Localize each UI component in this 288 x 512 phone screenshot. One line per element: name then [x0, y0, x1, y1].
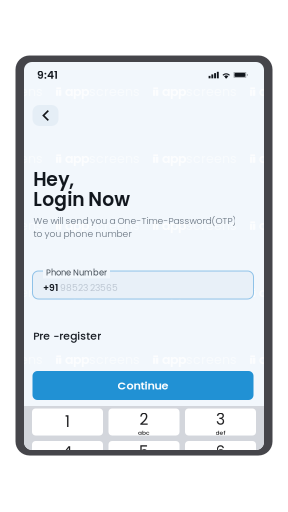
staticText: app: [65, 351, 89, 368]
staticText: app: [65, 150, 89, 167]
staticText: Hey,: [33, 166, 74, 193]
staticText: screens: [0, 418, 43, 435]
button[interactable]: 6: [185, 441, 256, 468]
staticText: screens: [0, 351, 43, 368]
staticText: app: [162, 418, 186, 435]
staticText: screens: [89, 418, 140, 435]
staticText: app: [259, 83, 283, 100]
staticText: 2: [139, 409, 148, 430]
staticText: screens: [89, 284, 140, 301]
staticText: abc: [138, 428, 150, 437]
staticText: screens: [0, 217, 43, 234]
button[interactable]: Back: [32, 105, 58, 126]
staticText: app: [259, 351, 283, 368]
button[interactable]: 4: [32, 441, 103, 468]
staticText: Pre -register: [33, 328, 101, 343]
staticText: screens: [0, 284, 43, 301]
staticText: app: [65, 83, 89, 100]
button[interactable]: 3: [185, 408, 256, 435]
staticText: app: [259, 150, 283, 167]
staticText: app: [162, 351, 186, 368]
staticText: app: [162, 217, 186, 234]
staticText: to you phone number: [33, 227, 131, 240]
staticText: 5: [139, 441, 149, 463]
staticText: 9:41: [37, 67, 58, 82]
staticText: app: [259, 418, 283, 435]
button[interactable]: 1: [32, 408, 103, 435]
staticText: Phone Number: [46, 267, 107, 278]
staticText: screens: [186, 284, 237, 301]
staticText: app: [259, 284, 283, 301]
button[interactable]: 2: [108, 408, 179, 435]
staticText: app: [65, 217, 89, 234]
staticText: app: [259, 217, 283, 234]
staticText: 3: [216, 409, 225, 430]
staticText: app: [162, 150, 186, 167]
staticText: screens: [89, 217, 140, 234]
staticText: screens: [0, 83, 43, 100]
staticText: 6: [215, 441, 225, 463]
staticText: screens: [186, 418, 237, 435]
staticText: 98523 23565: [58, 282, 118, 294]
staticText: def: [215, 428, 225, 437]
staticText: screens: [186, 217, 237, 234]
staticText: Login Now: [33, 186, 130, 213]
button[interactable]: 5: [108, 441, 179, 468]
staticText: app: [162, 284, 186, 301]
staticText: app: [65, 284, 89, 301]
staticText: We will send you a One-Time-Password(OTP…: [33, 214, 236, 227]
staticText: app: [162, 83, 186, 100]
button[interactable]: Continue: [32, 371, 253, 400]
staticText: app: [65, 418, 89, 435]
staticText: 1: [65, 411, 70, 433]
staticText: screens: [0, 150, 43, 167]
staticText: Continue: [117, 378, 168, 393]
staticText: +91: [43, 282, 58, 294]
staticText: 4: [62, 441, 72, 463]
